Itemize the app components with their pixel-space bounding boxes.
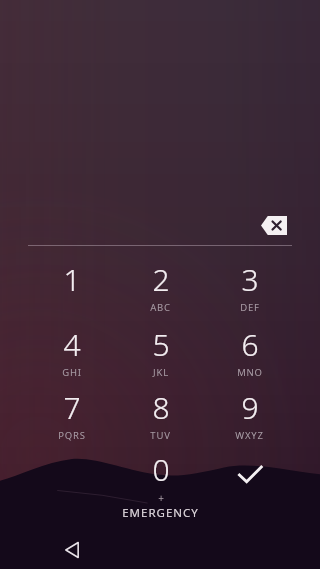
- button[interactable]: 7: [27, 387, 116, 443]
- staticText: 8: [152, 387, 170, 428]
- button[interactable]: 6: [205, 324, 294, 380]
- staticText: EMERGENCY: [122, 505, 199, 521]
- staticText: JKL: [153, 366, 169, 379]
- staticText: 6: [241, 324, 259, 365]
- staticText: DEF: [240, 301, 260, 314]
- staticText: GHI: [62, 366, 82, 379]
- staticText: WXYZ: [235, 429, 264, 442]
- button[interactable]: 8: [116, 387, 205, 443]
- button[interactable]: 9: [205, 387, 294, 443]
- staticText: 1: [63, 259, 81, 300]
- staticText: TUV: [150, 429, 171, 442]
- staticText: ABC: [150, 301, 171, 314]
- staticText: 0: [152, 449, 170, 490]
- staticText: +: [158, 491, 165, 505]
- button[interactable]: 4: [27, 324, 116, 380]
- button[interactable]: 2: [116, 259, 205, 315]
- button[interactable]: EMERGENCY: [0, 501, 320, 525]
- staticText: 9: [241, 387, 259, 428]
- button[interactable]: Back: [48, 530, 96, 569]
- button[interactable]: Backspace: [252, 207, 296, 243]
- button[interactable]: 3: [205, 259, 294, 315]
- button[interactable]: 0: [116, 449, 205, 505]
- staticText: MNO: [237, 366, 263, 379]
- button[interactable]: Enter: [205, 449, 294, 501]
- staticText: 5: [152, 324, 170, 365]
- staticText: 4: [63, 324, 81, 365]
- staticText: 3: [241, 259, 259, 300]
- button[interactable]: 5: [116, 324, 205, 380]
- staticText: PQRS: [58, 429, 86, 442]
- staticText: 7: [63, 387, 81, 428]
- button[interactable]: 1: [27, 259, 116, 315]
- staticText: 2: [152, 259, 170, 300]
